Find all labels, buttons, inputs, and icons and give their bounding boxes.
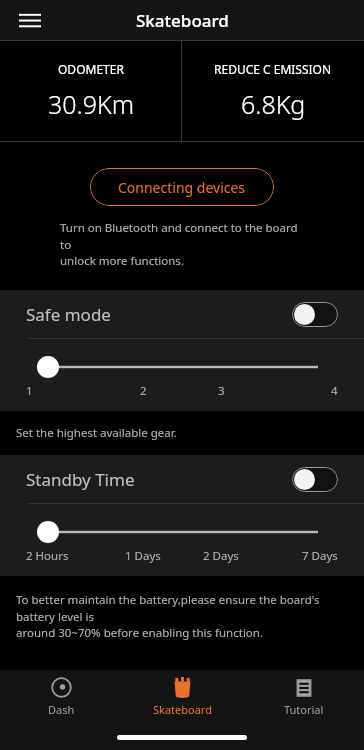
staticText: 4	[331, 383, 338, 399]
button[interactable]: Slider	[46, 355, 318, 379]
button[interactable]: Tutorial	[243, 670, 364, 724]
button[interactable]: Dash	[0, 670, 122, 724]
staticText: Safe mode	[26, 303, 111, 326]
staticText: REDUCE C EMISSION	[214, 61, 332, 77]
staticText: 3	[218, 383, 225, 399]
staticText: 6.8Kg	[241, 87, 306, 121]
button[interactable]: Slider	[46, 520, 318, 544]
staticText: 2 Hours	[26, 548, 69, 564]
staticText: 30.9Km	[48, 87, 134, 121]
staticText: ODOMETER	[58, 61, 124, 77]
button[interactable]: Toggle	[292, 302, 338, 327]
staticText: 2 Days	[203, 548, 239, 564]
staticText: Standby Time	[26, 468, 135, 491]
button[interactable]: Connecting devices	[90, 168, 274, 206]
button[interactable]: ODOMETER	[0, 41, 181, 141]
staticText: 2	[140, 383, 147, 399]
staticText: Dash	[48, 702, 75, 717]
staticText: Tutorial	[284, 702, 324, 717]
staticText: Turn on Bluetooth and connect to the boa…	[60, 220, 304, 268]
staticText: 1	[26, 383, 33, 399]
staticText: Connecting devices	[118, 178, 246, 197]
button[interactable]: Standby Time	[0, 455, 364, 503]
staticText: Skateboard	[153, 702, 212, 717]
button[interactable]: Skateboard	[122, 670, 243, 724]
staticText: 7 Days	[302, 548, 338, 564]
staticText: Set the highest available gear.	[16, 425, 177, 441]
staticText: Skateboard	[136, 9, 229, 32]
button[interactable]: Safe mode	[0, 290, 364, 338]
button[interactable]: Toggle	[292, 467, 338, 492]
button[interactable]: REDUCE C EMISSION	[182, 41, 364, 141]
staticText: To better maintain the battery,please en…	[16, 592, 348, 640]
staticText: 1 Days	[125, 548, 161, 564]
button[interactable]: Menu	[10, 0, 50, 40]
